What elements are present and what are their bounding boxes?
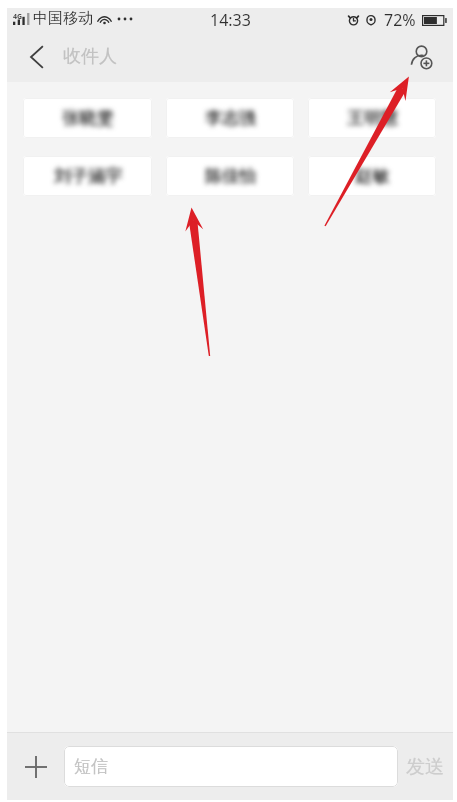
button[interactable]: 陈佳怡 xyxy=(166,156,294,196)
button[interactable]: 张晓雯 xyxy=(23,98,152,138)
staticText: 李志强 xyxy=(205,108,256,129)
staticText: 中国移动 xyxy=(33,9,93,28)
staticText: 14:33 xyxy=(210,9,251,31)
staticText: 陈佳怡 xyxy=(205,166,256,187)
button[interactable]: 发送 xyxy=(398,733,453,800)
button[interactable]: 赵敏 xyxy=(308,156,436,196)
staticText: 短信 xyxy=(74,756,108,777)
staticText: 王明慧 xyxy=(347,108,398,129)
button[interactable]: Back xyxy=(7,31,55,82)
button[interactable]: 李志强 xyxy=(166,98,294,138)
staticText: 发送 xyxy=(406,755,444,779)
staticText: 72% xyxy=(384,9,416,31)
button[interactable]: 短信 xyxy=(64,746,398,787)
staticText: 张晓雯 xyxy=(62,108,113,129)
staticText: 刘子涵宇 xyxy=(54,166,122,187)
staticText: 赵敏 xyxy=(355,166,389,187)
button[interactable]: 王明慧 xyxy=(308,98,436,138)
staticText: 4G xyxy=(13,12,23,22)
staticText: 收件人 xyxy=(63,45,117,68)
button[interactable]: Add attachment xyxy=(7,733,64,800)
button[interactable]: Add recipient xyxy=(399,34,445,80)
button[interactable]: 刘子涵宇 xyxy=(23,156,152,196)
